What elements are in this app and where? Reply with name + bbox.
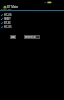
other: Battery status — [44, 1, 53, 4]
staticText: BT-SE — [4, 21, 11, 25]
staticText: GET — [11, 35, 16, 39]
button[interactable]: BT-SE — [0, 21, 64, 25]
staticText: HC-05 — [4, 25, 12, 29]
staticText: HC-06 — [4, 13, 12, 17]
button[interactable]: Reset to default — [24, 35, 40, 39]
button[interactable]: GET — [10, 35, 16, 39]
staticText: BT Mate — [7, 5, 19, 9]
button[interactable]: HC-05 — [0, 25, 64, 29]
button[interactable]: HC-06 — [0, 13, 64, 17]
staticText: RNBT — [4, 17, 11, 21]
staticText: Select dev — [1, 8, 12, 11]
button[interactable]: RNBT — [0, 17, 64, 21]
staticText: Reset to default — [24, 35, 40, 39]
